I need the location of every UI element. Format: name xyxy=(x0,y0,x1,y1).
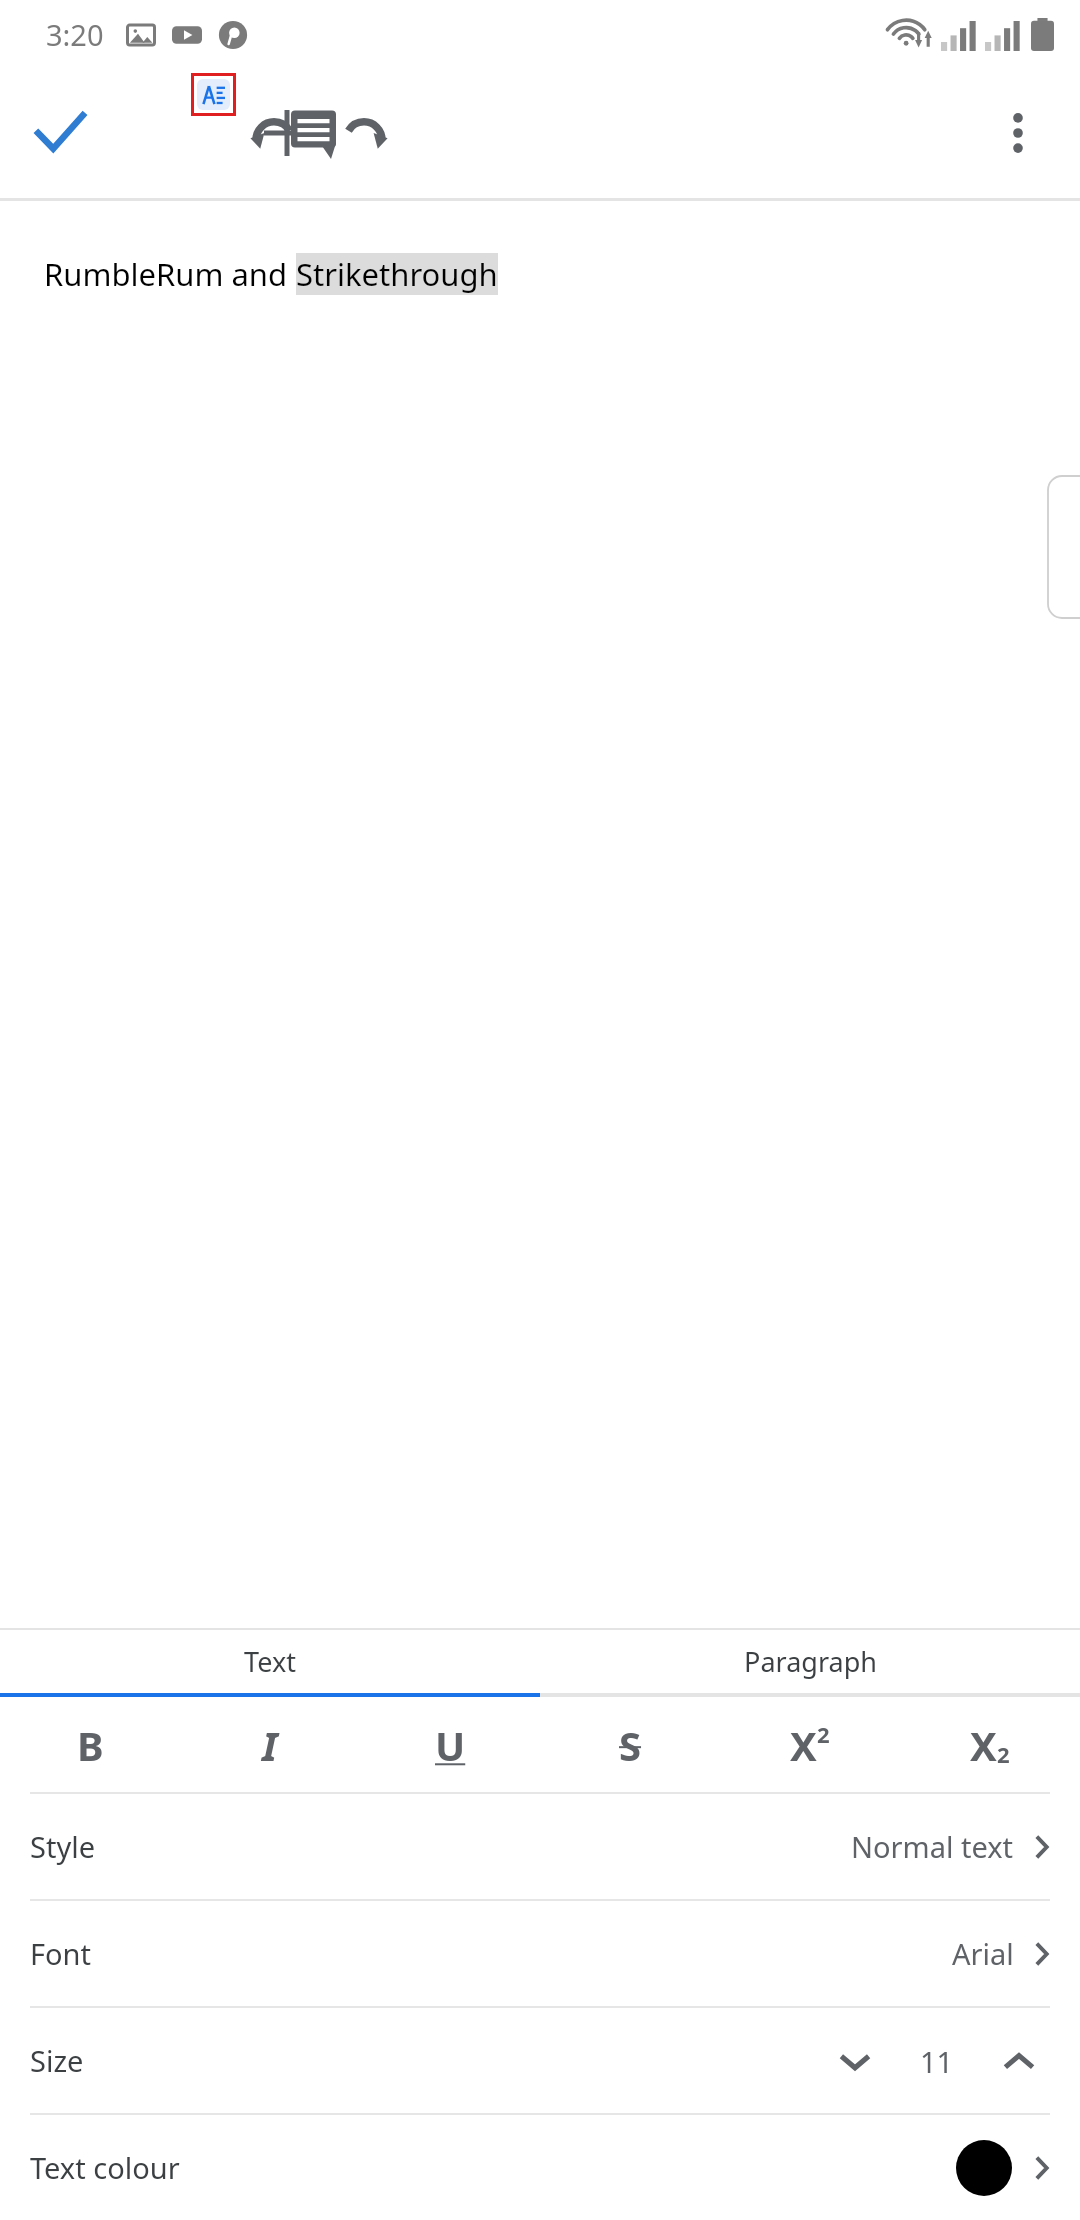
button[interactable]: Format xyxy=(191,73,236,116)
button[interactable]: Text colour xyxy=(0,2115,1080,2220)
staticText: I xyxy=(262,1718,278,1772)
staticText: Normal text xyxy=(851,1827,1014,1866)
button[interactable]: Font xyxy=(0,1901,1080,2006)
staticText: S xyxy=(619,1718,642,1772)
button[interactable]: Style xyxy=(0,1794,1080,1899)
button[interactable]: Redo xyxy=(318,87,410,179)
staticText: Arial xyxy=(952,1934,1014,1973)
staticText: RumbleRum and xyxy=(44,253,296,295)
staticText: 3:20 xyxy=(46,15,104,54)
staticText: Text xyxy=(244,1643,296,1680)
button[interactable]: Subscript xyxy=(900,1697,1080,1792)
staticText: 2 xyxy=(997,1739,1010,1769)
staticText: Size xyxy=(30,2041,84,2080)
staticText: Text colour xyxy=(30,2148,180,2187)
button[interactable]: Italic xyxy=(180,1697,360,1792)
button[interactable]: Paragraph xyxy=(540,1630,1080,1693)
button[interactable]: Decrease size xyxy=(816,2022,894,2100)
button[interactable]: Bold xyxy=(0,1697,180,1792)
button[interactable]: More options xyxy=(972,87,1064,179)
button[interactable]: Done xyxy=(18,91,102,175)
staticText: B xyxy=(77,1718,104,1772)
button[interactable]: Increase size xyxy=(980,2022,1058,2100)
button[interactable]: Strikethrough xyxy=(540,1697,720,1792)
button[interactable]: Insert xyxy=(241,87,333,179)
staticText: Paragraph xyxy=(744,1643,877,1680)
button[interactable]: Underline xyxy=(360,1697,540,1792)
staticText: Font xyxy=(30,1934,91,1973)
staticText: 2 xyxy=(817,1719,830,1749)
staticText: U xyxy=(435,1718,466,1772)
staticText: Style xyxy=(30,1827,96,1866)
staticText: X xyxy=(790,1718,817,1772)
button[interactable]: Superscript xyxy=(720,1697,900,1792)
button[interactable]: Comments xyxy=(270,87,362,179)
staticText: 11 xyxy=(920,2042,954,2081)
staticText: Strikethrough xyxy=(296,253,498,295)
button[interactable]: Undo xyxy=(228,87,320,179)
staticText: X xyxy=(970,1718,997,1772)
button[interactable]: Text xyxy=(0,1630,540,1693)
